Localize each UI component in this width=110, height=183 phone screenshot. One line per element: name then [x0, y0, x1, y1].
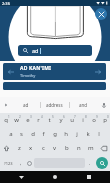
button[interactable]: h	[60, 127, 71, 141]
button[interactable]: b	[61, 141, 73, 155]
staticText: i	[82, 116, 84, 124]
button[interactable]: y	[55, 113, 66, 127]
button[interactable]: v	[49, 141, 61, 155]
staticText: 7	[74, 115, 76, 119]
button[interactable]: o	[88, 113, 99, 127]
button[interactable]: Recent apps	[76, 171, 102, 183]
button[interactable]: m	[85, 141, 97, 155]
staticText: p	[103, 116, 107, 124]
staticText: q	[4, 116, 8, 124]
button[interactable]: Back	[8, 171, 34, 183]
staticText: 6	[63, 115, 65, 119]
button[interactable]: g	[49, 127, 60, 141]
staticText: f	[42, 130, 45, 138]
staticText: l	[98, 130, 100, 138]
staticText: 0	[107, 115, 109, 119]
staticText: 2	[19, 115, 21, 119]
staticText: k	[86, 130, 90, 138]
button[interactable]: Search	[94, 155, 110, 171]
button[interactable]: s	[16, 127, 27, 141]
staticText: ad	[32, 47, 39, 54]
staticText: address	[46, 102, 63, 108]
button[interactable]: j	[71, 127, 82, 141]
button[interactable]: d	[27, 127, 38, 141]
staticText: 1	[8, 115, 10, 119]
staticText: 9	[96, 115, 98, 119]
button[interactable]: n	[73, 141, 85, 155]
button[interactable]: c	[37, 141, 49, 155]
button[interactable]: k	[82, 127, 93, 141]
staticText: 3	[30, 115, 32, 119]
button[interactable]: Voice input	[98, 97, 110, 113]
staticText: 5	[52, 115, 54, 119]
staticText: y	[59, 116, 63, 124]
staticText: b	[65, 144, 69, 152]
staticText: z	[18, 144, 21, 152]
button[interactable]: x	[25, 141, 37, 155]
button[interactable]: Home	[42, 171, 68, 183]
button[interactable]: Shift	[0, 141, 13, 155]
staticText: u	[70, 116, 74, 124]
button[interactable]: t	[44, 113, 55, 127]
button[interactable]: ad	[12, 97, 40, 113]
staticText: 2:36	[2, 1, 10, 6]
button[interactable]: q	[0, 113, 11, 127]
staticText: and	[79, 102, 88, 108]
button[interactable]: Backspace	[97, 141, 110, 155]
button[interactable]: w	[11, 113, 22, 127]
button[interactable]: i	[77, 113, 88, 127]
staticText: t	[48, 116, 51, 124]
button[interactable]: u	[66, 113, 77, 127]
button[interactable]: Close	[95, 8, 107, 20]
staticText: d	[31, 130, 35, 138]
staticText: 4	[41, 115, 43, 119]
staticText: ?123	[4, 161, 13, 166]
staticText: a	[9, 130, 13, 138]
button[interactable]: and	[69, 97, 98, 113]
button[interactable]: p	[99, 113, 110, 127]
staticText: c	[42, 144, 45, 152]
button[interactable]: a	[6, 127, 16, 141]
button[interactable]: e	[22, 113, 33, 127]
staticText: m	[88, 144, 94, 152]
staticText: o	[92, 116, 96, 124]
staticText: 8	[85, 115, 87, 119]
staticText: h	[64, 130, 68, 138]
button[interactable]: z	[13, 141, 25, 155]
button[interactable]: address	[40, 97, 69, 113]
staticText: e	[26, 116, 30, 124]
staticText: ad	[23, 102, 29, 108]
button[interactable]: ?123	[0, 155, 16, 171]
button[interactable]	[3, 82, 106, 90]
staticText: x	[29, 144, 33, 152]
button[interactable]: r	[33, 113, 44, 127]
staticText: ,	[20, 160, 22, 167]
staticText: j	[76, 130, 78, 138]
staticText: AD KAN'IMI	[20, 65, 52, 72]
staticText: v	[53, 144, 57, 152]
button[interactable]: l	[93, 127, 104, 141]
staticText: n	[77, 144, 81, 152]
staticText: g	[53, 130, 57, 138]
button[interactable]: AD KAN'IMI	[3, 63, 106, 80]
button[interactable]: ,	[16, 155, 25, 171]
button[interactable]: f	[38, 127, 49, 141]
staticText: Timothy	[20, 73, 36, 78]
staticText: r	[37, 116, 40, 124]
button[interactable]: More suggestions	[0, 97, 12, 113]
staticText: s	[20, 130, 23, 138]
button[interactable]: Emoji	[25, 155, 34, 171]
button[interactable]: ad	[18, 45, 92, 56]
staticText: .	[89, 160, 91, 167]
staticText: w	[14, 116, 19, 124]
button[interactable]: .	[85, 155, 94, 171]
